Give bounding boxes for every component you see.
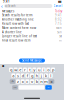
button[interactable]: x xyxy=(21,79,25,84)
button[interactable]: y xyxy=(32,67,36,72)
button[interactable]: Search results for term xyxy=(2,13,62,17)
staticText: j xyxy=(41,73,42,78)
staticText: g xyxy=(31,73,33,78)
button[interactable]: e xyxy=(18,67,22,72)
staticText: ^ xyxy=(11,79,13,84)
button[interactable]: k xyxy=(44,73,48,78)
staticText: q xyxy=(10,67,12,72)
staticText: Final result row item xyxy=(2,39,30,42)
staticText: u xyxy=(38,67,40,72)
staticText: c xyxy=(26,79,28,84)
button[interactable]: c xyxy=(25,79,29,84)
button[interactable]: s xyxy=(16,73,20,78)
button[interactable]: x xyxy=(49,79,54,84)
staticText: r xyxy=(24,67,26,72)
staticText: x xyxy=(50,79,52,84)
button[interactable]: j xyxy=(39,73,43,78)
button[interactable]: Back xyxy=(1,4,3,8)
staticText: l xyxy=(50,73,51,78)
staticText: Messages xyxy=(2,9,14,13)
button[interactable]: b xyxy=(35,79,39,84)
button[interactable] xyxy=(18,85,44,90)
staticText: 9:41 xyxy=(3,0,10,3)
staticText: 7:15 xyxy=(55,22,62,25)
button[interactable]: ^ xyxy=(10,79,15,84)
staticText: Search xyxy=(8,4,16,8)
button[interactable]: Cancel xyxy=(53,4,62,8)
staticText: Send Message xyxy=(22,59,42,62)
button[interactable]: Another matching line xyxy=(2,17,62,22)
staticText: e xyxy=(19,67,21,72)
button[interactable]: r xyxy=(23,67,27,72)
staticText: A shorter line xyxy=(2,30,22,34)
staticText: k xyxy=(45,73,47,78)
staticText: m xyxy=(44,79,48,84)
button[interactable]: z xyxy=(16,79,20,84)
button[interactable]: i xyxy=(42,67,46,72)
staticText: x xyxy=(22,79,24,84)
staticText: Search results for term xyxy=(2,13,32,17)
staticText: ● xyxy=(2,64,4,67)
staticText: 123 xyxy=(13,87,16,88)
button[interactable]: Send Message xyxy=(19,58,45,62)
staticText: Cancel xyxy=(53,4,62,8)
staticText: s xyxy=(17,73,19,78)
staticText: 9:41 xyxy=(55,13,62,17)
button[interactable]: t xyxy=(28,67,32,72)
staticText: Longer result line of text xyxy=(2,34,37,38)
button[interactable]: go xyxy=(45,85,52,90)
staticText: ▮▮▮ xyxy=(58,0,61,3)
staticText: a xyxy=(12,73,14,78)
button[interactable]: Result row with text xyxy=(2,22,62,26)
staticText: ‹ xyxy=(1,2,3,10)
button[interactable]: h xyxy=(35,73,39,78)
staticText: Fri xyxy=(59,39,62,42)
staticText: b xyxy=(36,79,38,84)
staticText: Another matching line xyxy=(2,18,34,21)
button[interactable]: l xyxy=(49,73,53,78)
staticText: Result row with text xyxy=(2,22,29,25)
staticText: w xyxy=(14,67,17,72)
staticText: i xyxy=(43,67,44,72)
staticText: Sat xyxy=(59,34,62,38)
button[interactable]: v xyxy=(30,79,34,84)
staticText: h xyxy=(36,73,38,78)
button[interactable]: m xyxy=(44,79,48,84)
staticText: Mon xyxy=(56,26,62,30)
button[interactable]: 123 xyxy=(12,85,18,90)
staticText: go xyxy=(47,87,49,88)
button[interactable]: p xyxy=(51,67,55,72)
staticText: 8:02 xyxy=(55,18,62,21)
staticText: v xyxy=(31,79,33,84)
staticText: y xyxy=(33,67,35,72)
button[interactable]: w xyxy=(14,67,18,72)
staticText: More content here now xyxy=(2,26,36,30)
staticText: t xyxy=(29,67,30,72)
button[interactable]: A shorter line xyxy=(2,30,62,34)
button[interactable]: d xyxy=(21,73,25,78)
button[interactable]: Messages xyxy=(2,9,62,13)
button[interactable]: g xyxy=(30,73,34,78)
button[interactable]: a xyxy=(11,73,15,78)
button[interactable]: o xyxy=(46,67,50,72)
button[interactable]: n xyxy=(39,79,43,84)
staticText: n xyxy=(40,79,42,84)
staticText: p xyxy=(52,67,54,72)
staticText: d xyxy=(22,73,24,78)
button[interactable]: More content here now xyxy=(2,26,62,30)
staticText: f xyxy=(27,73,28,78)
staticText: o xyxy=(47,67,49,72)
staticText: z xyxy=(17,79,19,84)
button[interactable]: f xyxy=(25,73,29,78)
staticText: Sun xyxy=(57,30,62,34)
button[interactable]: Longer result line of text xyxy=(2,34,62,38)
button[interactable]: q xyxy=(9,67,13,72)
button[interactable]: Final result row item xyxy=(2,38,62,43)
staticText: Today xyxy=(55,9,62,13)
button[interactable]: u xyxy=(37,67,41,72)
